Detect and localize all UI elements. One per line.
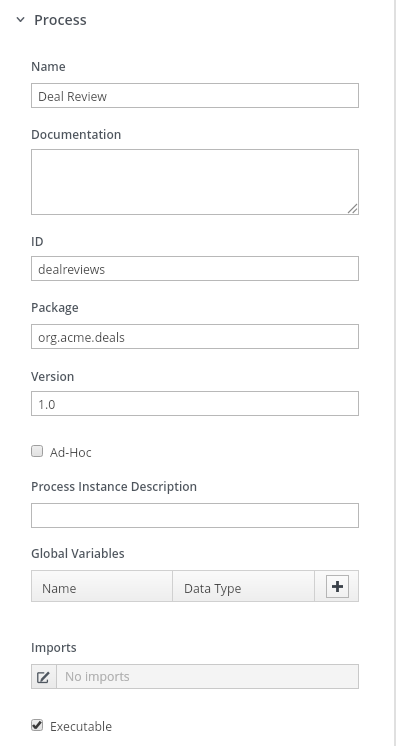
staticText: Executable: [50, 718, 113, 732]
button[interactable]: Edit imports: [31, 664, 56, 689]
button[interactable]: Executable: [31, 718, 113, 732]
staticText: Name: [31, 58, 66, 74]
staticText: Global Variables: [31, 545, 125, 561]
staticText: Process: [34, 10, 87, 29]
button[interactable]: Add variable: [326, 575, 349, 598]
staticText: Ad-Hoc: [50, 444, 92, 458]
button[interactable]: dealreviews: [31, 256, 359, 281]
button[interactable]: Ad-Hoc: [31, 444, 92, 458]
staticText: No imports: [65, 668, 130, 685]
staticText: Data Type: [184, 580, 242, 597]
staticText: Imports: [31, 639, 77, 655]
button[interactable]: [31, 503, 359, 528]
staticText: Deal Review: [38, 88, 107, 105]
button[interactable]: Deal Review: [31, 83, 359, 108]
staticText: Process Instance Description: [31, 478, 198, 494]
button[interactable]: [31, 149, 359, 215]
staticText: Version: [31, 368, 75, 384]
button[interactable]: Data Type: [173, 570, 314, 602]
staticText: Package: [31, 299, 79, 315]
button[interactable]: org.acme.deals: [31, 324, 359, 349]
button[interactable]: Process: [0, 8, 396, 31]
staticText: ID: [31, 233, 44, 249]
button[interactable]: Name: [31, 570, 172, 602]
button[interactable]: 1.0: [31, 391, 359, 416]
staticText: org.acme.deals: [38, 329, 125, 346]
staticText: 1.0: [38, 396, 56, 413]
staticText: Name: [42, 580, 77, 597]
staticText: dealreviews: [38, 261, 106, 278]
staticText: Documentation: [31, 126, 122, 142]
